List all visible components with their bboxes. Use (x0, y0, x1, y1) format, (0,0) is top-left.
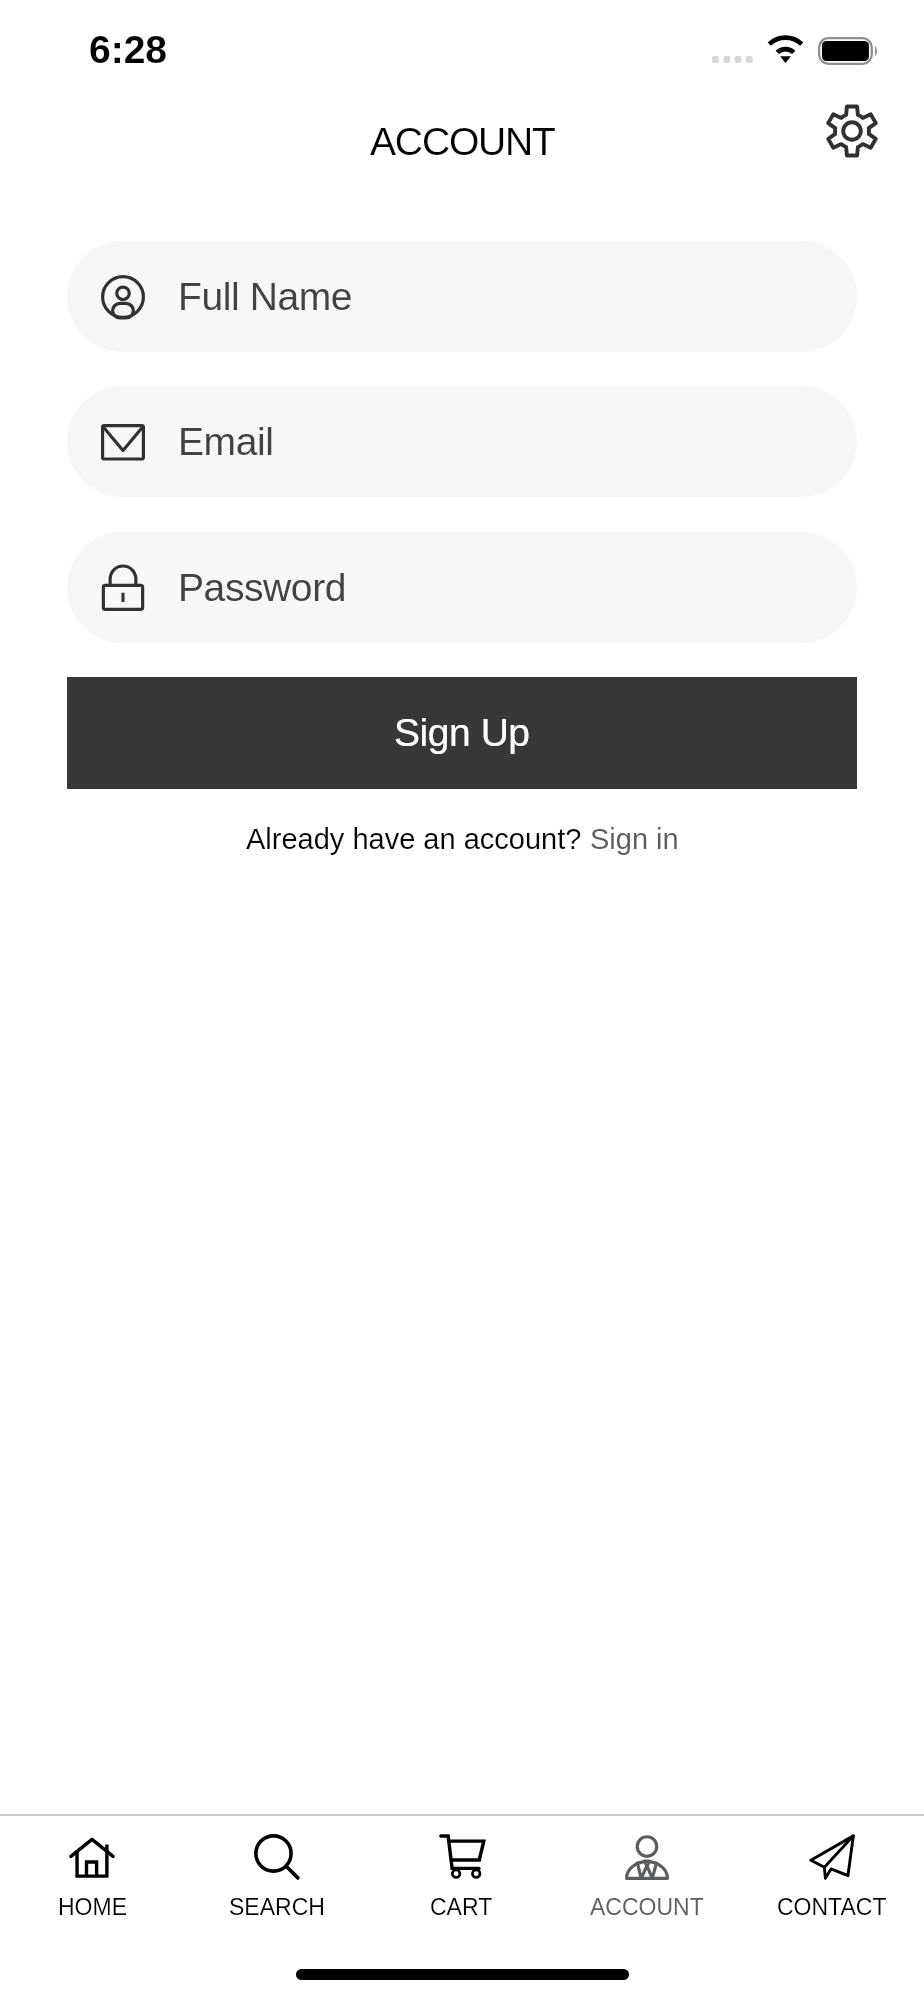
button[interactable]: ACCOUNT (554, 1816, 739, 1959)
button[interactable]: Sign in (590, 823, 679, 855)
staticText: Sign in (590, 823, 679, 855)
staticText: ACCOUNT (370, 120, 555, 164)
staticText: Sign Up (394, 711, 530, 755)
staticText: CONTACT (777, 1894, 887, 1920)
staticText: Full Name (178, 275, 353, 319)
staticText: 6:28 (89, 28, 168, 72)
staticText: CART (430, 1894, 493, 1920)
staticText: HOME (58, 1894, 127, 1920)
staticText: Password (178, 566, 347, 610)
staticText: Email (178, 420, 274, 464)
staticText: SEARCH (229, 1894, 325, 1920)
staticText: Already have an account? (246, 823, 590, 855)
button[interactable]: CONTACT (739, 1816, 924, 1959)
button[interactable]: Email (67, 386, 857, 497)
button[interactable]: Sign Up (67, 677, 857, 789)
button[interactable]: Password (67, 532, 857, 643)
button[interactable]: Full Name (67, 241, 857, 352)
button[interactable]: HOME (0, 1816, 184, 1959)
button[interactable]: SEARCH (184, 1816, 369, 1959)
button[interactable]: CART (369, 1816, 554, 1959)
button[interactable]: Settings (819, 98, 885, 164)
staticText: ACCOUNT (590, 1894, 704, 1920)
